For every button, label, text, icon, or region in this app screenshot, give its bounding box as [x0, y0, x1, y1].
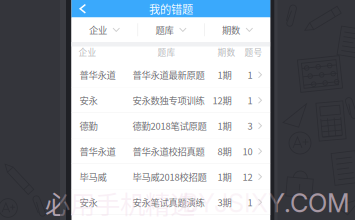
staticText: 安永笔试真题演练: [132, 195, 204, 209]
staticText: 安永数独专项训练: [132, 93, 204, 107]
staticText: 12期: [212, 93, 231, 107]
staticText: 题号: [244, 46, 262, 58]
staticText: 题库: [156, 23, 174, 36]
staticText: 普华永道最新原题: [132, 68, 204, 81]
staticText: 题库: [157, 46, 175, 58]
staticText: 1: [247, 68, 252, 81]
staticText: BYJSIXY.COM: [182, 188, 350, 218]
staticText: 必用手机精选: [45, 185, 195, 220]
button[interactable]: 期数: [205, 17, 270, 42]
staticText: BYJSIXY.COM: [182, 188, 350, 218]
staticText: 1: [247, 195, 252, 209]
staticText: 普华永道: [79, 144, 115, 158]
staticText: 3期: [217, 195, 231, 209]
staticText: 安永: [79, 93, 97, 107]
button[interactable]: 安永: [71, 189, 270, 215]
staticText: 必用手机精选: [45, 185, 195, 220]
staticText: 企业: [78, 46, 96, 58]
button[interactable]: 题库: [138, 17, 204, 42]
staticText: 德勤: [79, 119, 97, 132]
staticText: 8期: [217, 144, 231, 158]
button[interactable]: Back: [71, 1, 94, 17]
button[interactable]: 毕马威: [71, 164, 270, 189]
staticText: 3: [247, 119, 252, 132]
staticText: 1期: [217, 170, 231, 183]
button[interactable]: 安永: [71, 87, 270, 113]
button[interactable]: 企业: [71, 17, 137, 42]
staticText: 10: [242, 144, 252, 158]
staticText: 毕马威: [79, 170, 106, 183]
staticText: 1: [247, 93, 252, 107]
staticText: 德勤2018笔试原题: [132, 119, 206, 132]
staticText: 毕马威2018校招题: [132, 170, 206, 183]
staticText: 1期: [217, 119, 231, 132]
staticText: 12: [242, 170, 252, 183]
staticText: 期数: [222, 23, 240, 36]
staticText: 期数: [217, 46, 235, 58]
staticText: 普华永道: [79, 68, 115, 81]
button[interactable]: 普华永道: [71, 138, 270, 164]
staticText: 企业: [89, 23, 107, 36]
staticText: 1期: [217, 68, 231, 81]
button[interactable]: 德勤: [71, 113, 270, 138]
button[interactable]: 普华永道: [71, 62, 270, 87]
staticText: 我的错题: [149, 1, 193, 17]
staticText: 安永: [79, 195, 97, 209]
staticText: 普华永道校招真题: [132, 144, 204, 158]
